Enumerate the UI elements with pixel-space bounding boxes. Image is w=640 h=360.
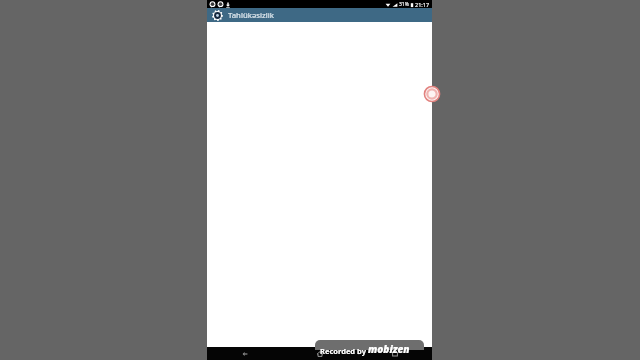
button[interactable]: Back: [207, 347, 282, 360]
staticText: 21:17: [415, 1, 430, 8]
staticText: Tahlükəsizlik: [228, 10, 274, 21]
staticText: mobizen: [368, 342, 410, 356]
button[interactable]: Tahlükəsizlik: [207, 8, 432, 22]
button[interactable]: Recents: [357, 347, 432, 360]
button[interactable]: Home: [282, 347, 357, 360]
staticText: Recorded by: [320, 346, 366, 356]
staticText: 31%: [399, 1, 409, 8]
button[interactable]: Record: [418, 80, 446, 108]
